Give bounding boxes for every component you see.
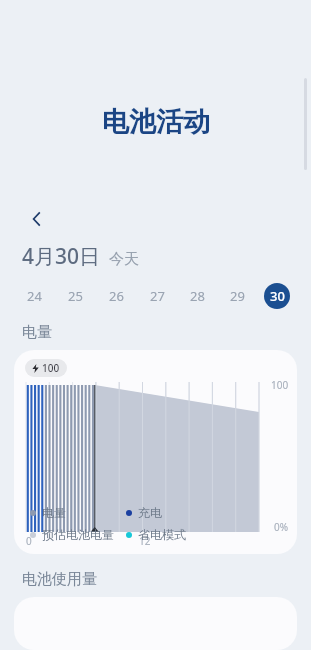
button[interactable]: 29 bbox=[217, 279, 257, 313]
button[interactable]: Back bbox=[18, 200, 56, 238]
staticText: 4月30日 bbox=[22, 242, 101, 271]
staticText: 电量 bbox=[22, 323, 52, 342]
staticText: 12 bbox=[139, 534, 151, 548]
button[interactable]: 预估电池电量 bbox=[30, 527, 126, 542]
staticText: 省电模式 bbox=[138, 527, 186, 542]
staticText: 电池活动 bbox=[102, 105, 210, 139]
button[interactable]: 28 bbox=[177, 279, 217, 313]
staticText: 今天 bbox=[109, 250, 139, 269]
button[interactable]: 充电 bbox=[126, 505, 162, 520]
staticText: 24 bbox=[27, 287, 42, 305]
staticText: 0% bbox=[274, 520, 289, 534]
button[interactable]: 省电模式 bbox=[126, 527, 186, 542]
staticText: 25 bbox=[68, 287, 83, 305]
staticText: 100 bbox=[42, 361, 60, 375]
staticText: 0 bbox=[26, 534, 32, 548]
button[interactable]: 30 bbox=[257, 279, 297, 313]
button[interactable]: 24 bbox=[14, 279, 55, 313]
staticText: 27 bbox=[150, 287, 165, 305]
staticText: 29 bbox=[230, 287, 245, 305]
button[interactable]: 100 bbox=[14, 350, 297, 554]
staticText: 30 bbox=[270, 287, 285, 305]
button[interactable]: 26 bbox=[96, 279, 137, 313]
staticText: 充电 bbox=[138, 505, 162, 520]
button[interactable]: 电量 bbox=[30, 505, 126, 520]
staticText: 100 bbox=[271, 378, 289, 392]
button[interactable]: 25 bbox=[55, 279, 96, 313]
staticText: 电量 bbox=[42, 505, 66, 520]
staticText: 28 bbox=[190, 287, 205, 305]
staticText: 26 bbox=[109, 287, 124, 305]
button[interactable]: 27 bbox=[137, 279, 177, 313]
staticText: 电池使用量 bbox=[22, 570, 97, 589]
staticText: 预估电池电量 bbox=[42, 527, 114, 542]
